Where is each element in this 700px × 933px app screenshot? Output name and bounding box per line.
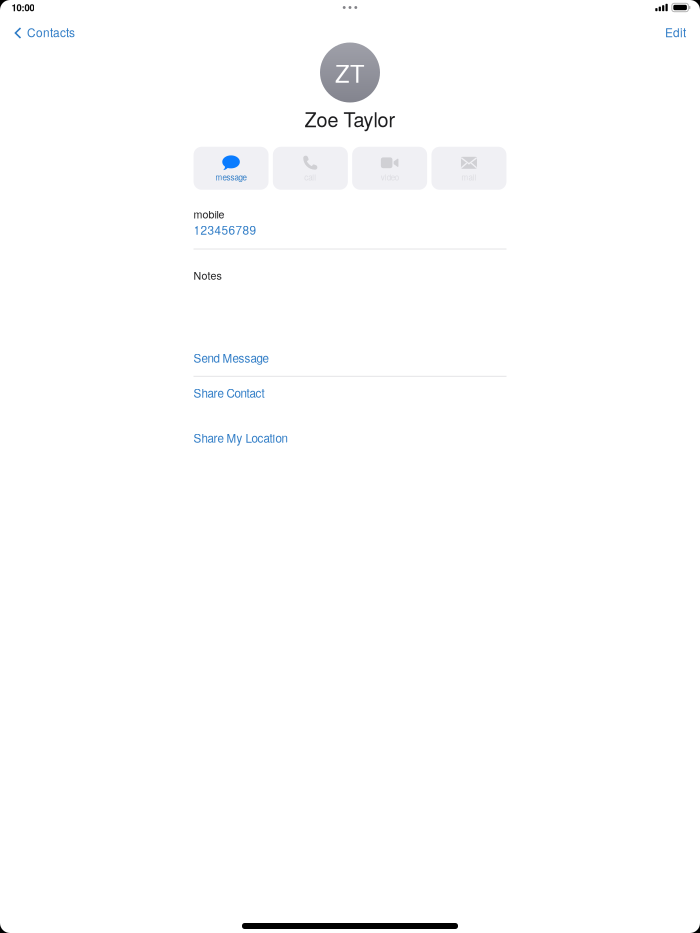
staticText: Share My Location [193, 429, 287, 446]
button[interactable]: Share Contact [193, 388, 506, 398]
staticText: Edit [665, 23, 686, 40]
staticText: 123456789 [193, 221, 256, 238]
staticText: mobile [193, 206, 224, 222]
staticText: Zoe Taylor [304, 104, 395, 133]
button[interactable]: Contacts [0, 23, 85, 41]
button[interactable]: Send Message [193, 353, 506, 363]
button[interactable]: 123456789 [193, 224, 506, 234]
staticText: Send Message [193, 349, 268, 366]
staticText: message [216, 171, 247, 183]
button[interactable]: Share My Location [193, 433, 506, 443]
staticText: mail [461, 171, 476, 183]
button[interactable]: Edit [655, 23, 700, 41]
staticText: Notes [193, 267, 221, 283]
staticText: 10:00 [11, 1, 34, 14]
staticText: call [304, 171, 316, 183]
button[interactable]: message [194, 147, 269, 190]
staticText: ZT [335, 55, 365, 89]
staticText: Contacts [27, 23, 75, 40]
button[interactable]: video [352, 147, 427, 190]
button[interactable]: mail [431, 147, 506, 190]
button[interactable]: call [273, 147, 348, 190]
staticText: video [381, 171, 399, 183]
staticText: Share Contact [193, 384, 264, 401]
